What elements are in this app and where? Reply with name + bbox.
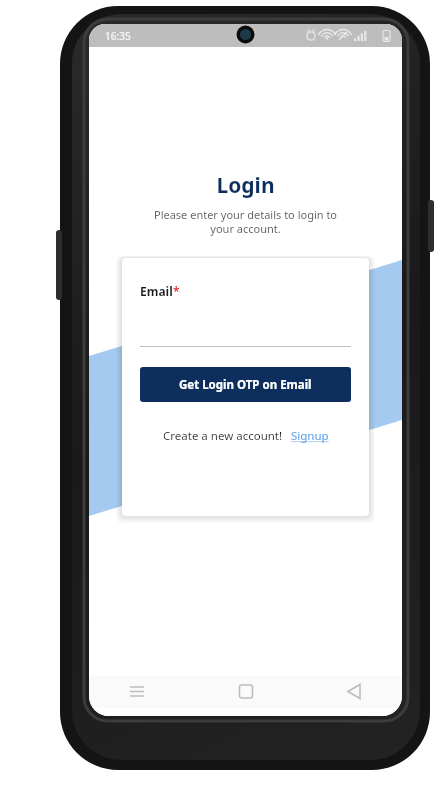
button[interactable]: Signup (283, 426, 329, 446)
staticText: Create a new account! (163, 428, 283, 444)
staticText: 16:35 (105, 29, 131, 43)
staticText: Login (89, 171, 402, 200)
staticText: Signup (291, 428, 329, 444)
button[interactable]: Get Login OTP on Email (140, 367, 351, 402)
staticText: Please enter your details to login to yo… (113, 207, 378, 236)
button[interactable]: Home (224, 678, 268, 706)
button[interactable]: Email input field (140, 321, 351, 347)
button[interactable]: Recent apps (115, 678, 159, 706)
button[interactable]: Back (332, 678, 376, 706)
staticText: Get Login OTP on Email (179, 377, 312, 393)
staticText: Email (140, 283, 173, 299)
staticText: * (173, 283, 180, 299)
